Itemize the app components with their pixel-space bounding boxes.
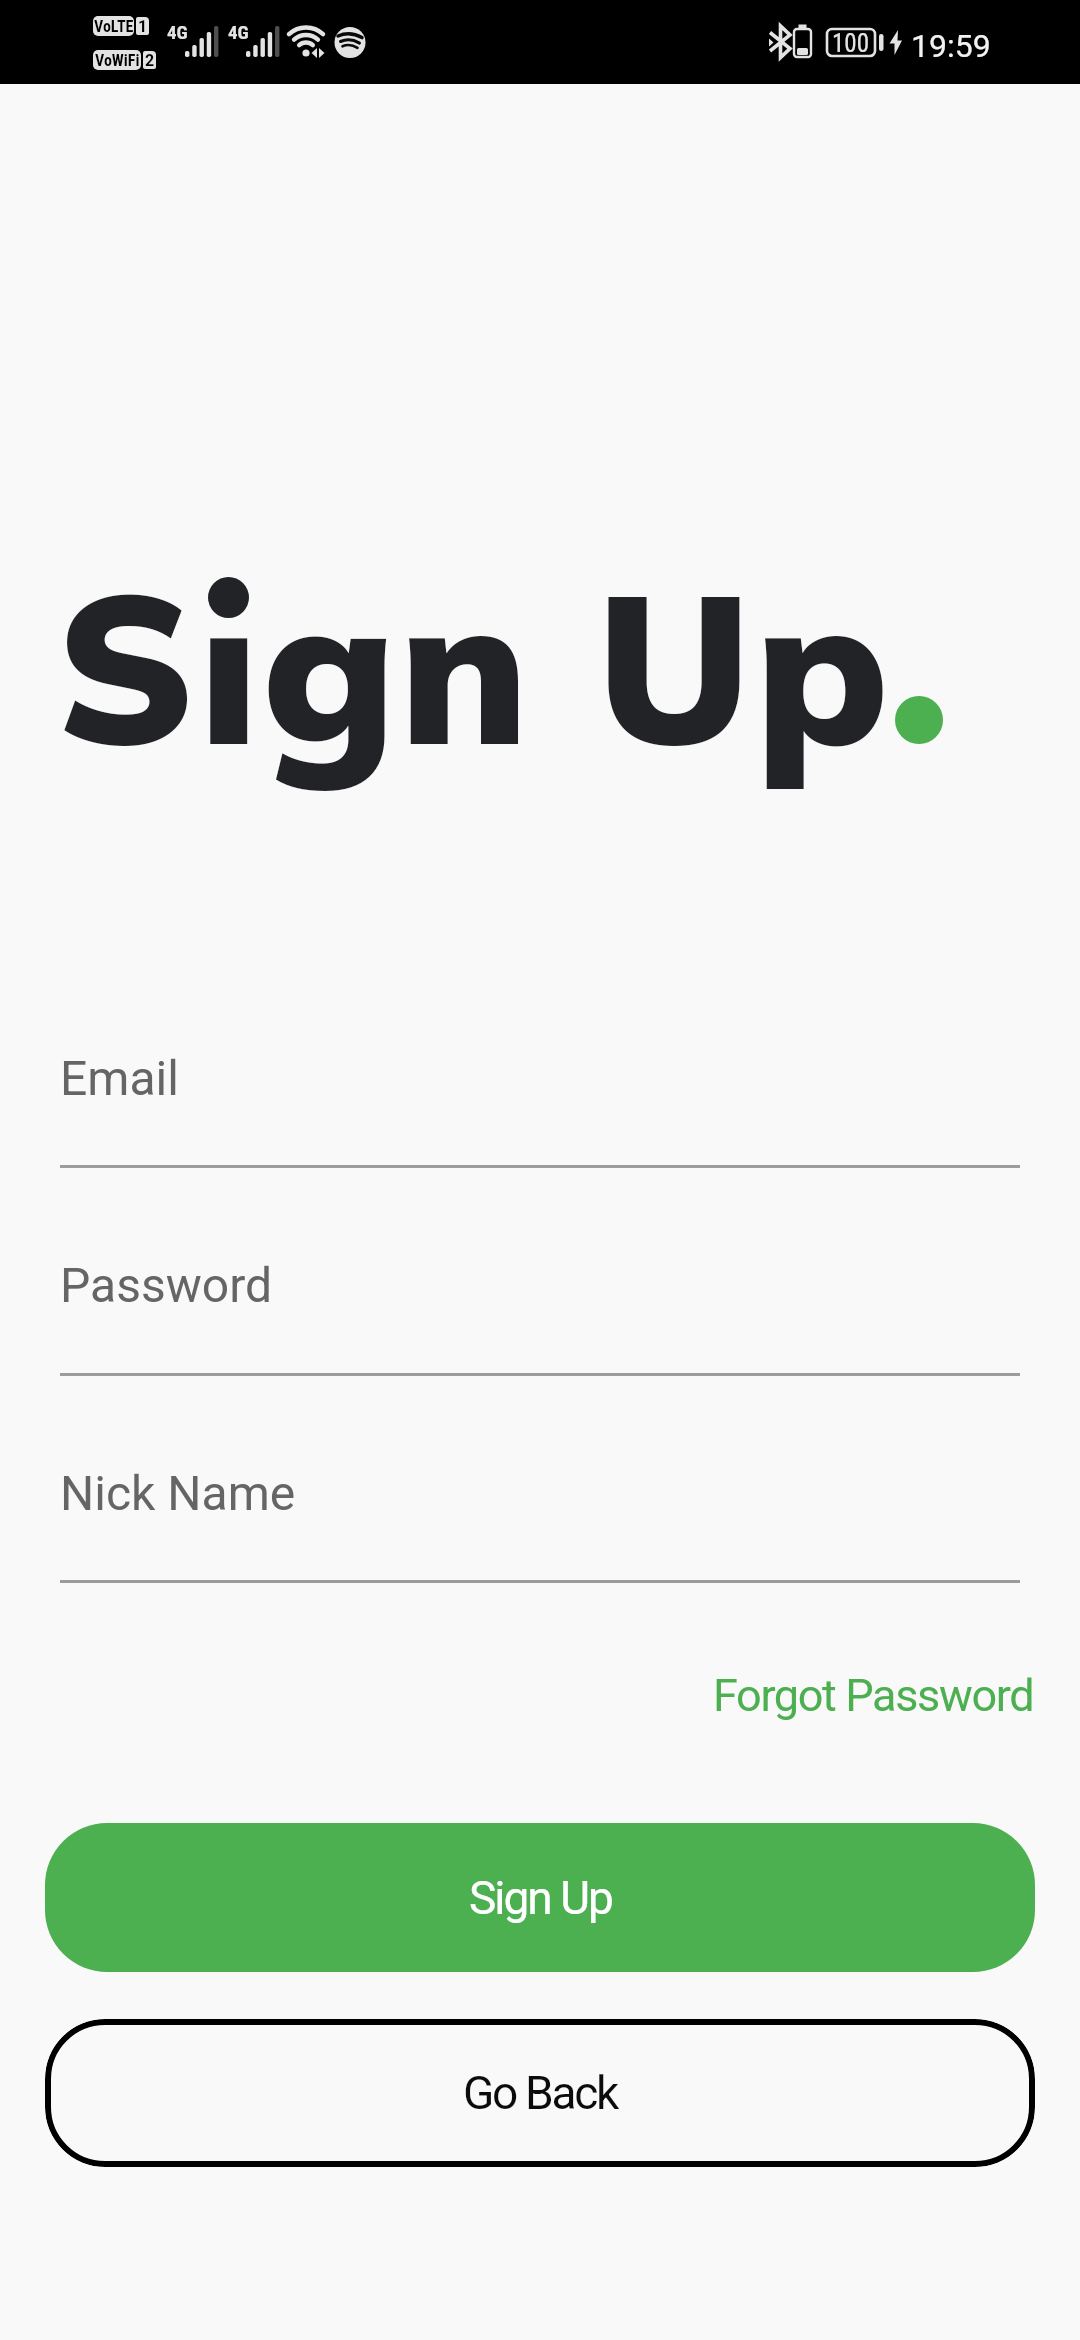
staticText: Nick Name (60, 1465, 296, 1521)
staticText: Forgot Password (713, 1669, 1034, 1722)
staticText: 4G (167, 21, 188, 43)
staticText: VoWiFi (95, 51, 140, 70)
staticText: Sign Up (469, 1871, 612, 1925)
button[interactable]: Forgot Password (713, 1669, 1080, 1722)
staticText: Password (60, 1257, 273, 1313)
button[interactable]: Password (60, 1231, 1020, 1376)
staticText: 2 (145, 51, 155, 69)
other: Status icons: mobile signal, Wi-Fi, Spot… (0, 0, 1080, 84)
button[interactable]: Email (60, 1024, 1020, 1168)
staticText: 1 (138, 17, 148, 35)
button[interactable]: Go Back (45, 2019, 1035, 2167)
staticText: 19:59 (911, 27, 991, 65)
staticText: 4G (228, 21, 249, 43)
staticText: VoLTE (94, 17, 134, 36)
staticText: Email (60, 1050, 179, 1106)
button[interactable]: Nick Name (60, 1439, 1020, 1583)
staticText: 100 (832, 29, 870, 56)
button[interactable]: Sign Up (45, 1823, 1035, 1972)
staticText: Sign Up (56, 535, 893, 796)
staticText: Go Back (463, 2066, 617, 2120)
